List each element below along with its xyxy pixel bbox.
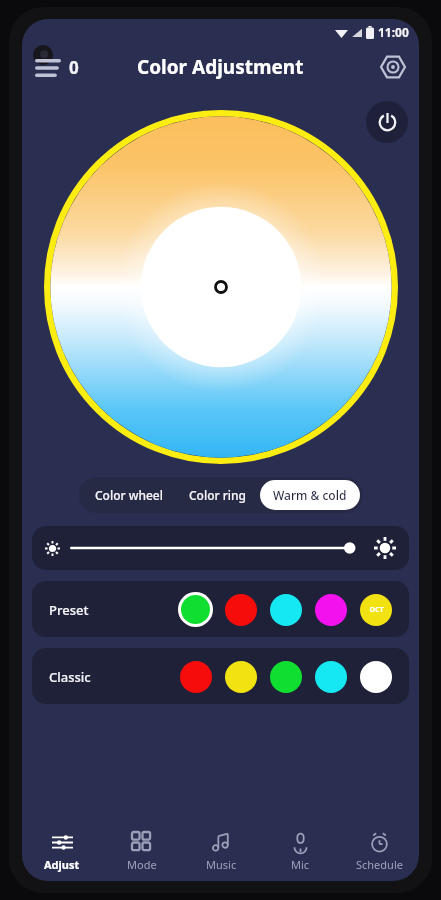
button[interactable] xyxy=(222,658,259,695)
button[interactable]: Music xyxy=(182,823,261,881)
button[interactable]: Color ring xyxy=(176,480,260,510)
button[interactable] xyxy=(267,591,304,628)
button[interactable]: Menu xyxy=(31,52,83,83)
button[interactable]: Settings xyxy=(375,49,411,85)
staticText: Adjust xyxy=(44,857,80,872)
button[interactable] xyxy=(312,658,349,695)
button[interactable] xyxy=(312,591,349,628)
button[interactable]: Mic xyxy=(261,823,340,881)
staticText: Color ring xyxy=(189,487,247,503)
staticText: Warm & cold xyxy=(273,487,347,503)
button[interactable] xyxy=(177,658,214,695)
button[interactable] xyxy=(267,658,304,695)
button[interactable]: Adjust xyxy=(22,823,102,881)
staticText: Mic xyxy=(291,857,310,872)
other: Menu xyxy=(35,59,61,77)
button[interactable]: Mode xyxy=(102,823,182,881)
staticText: Preset xyxy=(49,601,89,619)
staticText: 0 xyxy=(69,56,79,79)
staticText: Music xyxy=(206,857,237,872)
staticText: Schedule xyxy=(356,857,403,872)
staticText: Classic xyxy=(49,668,91,686)
staticText: 11:00 xyxy=(378,24,409,40)
staticText: Color Adjustment xyxy=(137,54,304,80)
button[interactable] xyxy=(177,591,214,628)
button[interactable]: Color wheel xyxy=(82,480,176,510)
button[interactable]: OCT xyxy=(357,591,394,628)
staticText: OCT xyxy=(369,605,384,615)
button[interactable]: Schedule xyxy=(340,823,419,881)
button[interactable]: Power xyxy=(366,101,408,143)
button[interactable] xyxy=(357,658,394,695)
staticText: Color wheel xyxy=(95,487,163,503)
button[interactable] xyxy=(32,526,409,570)
staticText: Mode xyxy=(127,857,157,872)
button[interactable]: Warm & cold xyxy=(260,480,360,510)
button[interactable] xyxy=(222,591,259,628)
